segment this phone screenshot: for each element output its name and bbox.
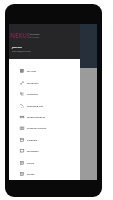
staticText: Progress Photos <box>27 126 47 129</box>
button[interactable]: Measurements <box>9 111 80 122</box>
staticText: Measurements <box>27 115 45 118</box>
button[interactable]: Progress Photos <box>9 122 80 133</box>
staticText: SYSTEM <box>30 35 40 38</box>
button[interactable]: My Hub <box>9 65 80 76</box>
staticText: Forms <box>27 172 35 175</box>
button[interactable]: Messages <box>9 145 80 156</box>
staticText: Shopping List <box>27 104 44 107</box>
staticText: Calendar <box>27 138 38 141</box>
button[interactable]: Calendar <box>9 134 80 145</box>
staticText: NEXUS <box>10 31 30 39</box>
staticText: Notes <box>27 161 35 164</box>
staticText: FITNESS <box>30 32 40 35</box>
staticText: Workouts <box>27 81 39 84</box>
staticText: John Doe <box>12 46 22 49</box>
staticText: Messages <box>27 149 39 152</box>
staticText: Nutrition <box>27 92 39 95</box>
button[interactable]: Notes <box>9 157 80 168</box>
button[interactable]: Shopping List <box>9 100 80 111</box>
staticText: john.doe@email.com <box>12 50 31 53</box>
staticText: My Hub <box>27 69 37 72</box>
button[interactable]: Workouts <box>9 77 80 88</box>
button[interactable]: Forms <box>9 168 80 179</box>
button[interactable]: Nutrition <box>9 88 80 99</box>
